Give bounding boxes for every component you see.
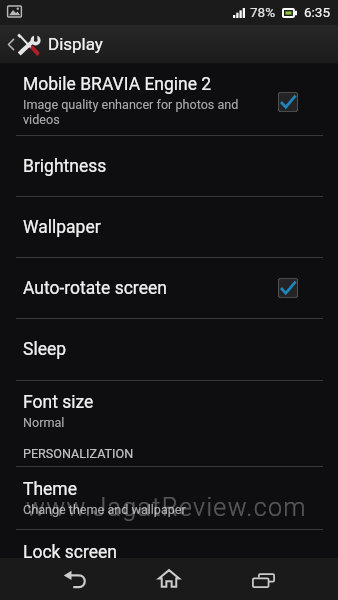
- button[interactable]: Wallpaper: [0, 197, 338, 257]
- button[interactable]: Enabled, checked: [278, 92, 298, 112]
- staticText: Display: [48, 34, 103, 54]
- staticText: Normal: [23, 415, 65, 430]
- staticText: PERSONALIZATION: [23, 446, 134, 461]
- staticText: Lock screen: [23, 542, 117, 563]
- staticText: Image quality enhancer for photos and vi…: [23, 97, 268, 127]
- staticText: 78%: [250, 4, 276, 20]
- button[interactable]: Recent apps: [216, 558, 310, 600]
- button[interactable]: Home: [122, 558, 216, 600]
- staticText: Theme: [23, 479, 77, 500]
- staticText: Mobile BRAVIA Engine 2: [23, 74, 212, 95]
- staticText: Font size: [23, 392, 94, 413]
- button[interactable]: Enabled, checked: [278, 278, 298, 298]
- staticText: Brightness: [23, 156, 107, 177]
- button[interactable]: Brightness: [0, 136, 338, 196]
- staticText: Sleep: [23, 339, 67, 360]
- button[interactable]: Navigate up, Display: [0, 25, 338, 63]
- staticText: Change theme and wallpaper: [23, 502, 186, 517]
- button[interactable]: Back: [29, 558, 122, 600]
- button[interactable]: Theme: [0, 467, 338, 529]
- button[interactable]: Mobile BRAVIA Engine 2: [0, 65, 338, 135]
- button[interactable]: Font size: [0, 381, 338, 440]
- button[interactable]: Sleep: [0, 319, 338, 380]
- button[interactable]: Lock screen: [0, 530, 338, 575]
- staticText: 6:35: [304, 4, 331, 20]
- staticText: www.JagatReview.com: [26, 493, 307, 522]
- button[interactable]: Auto-rotate screen: [0, 258, 338, 318]
- staticText: Wallpaper: [23, 217, 101, 238]
- staticText: Auto-rotate screen: [23, 278, 278, 299]
